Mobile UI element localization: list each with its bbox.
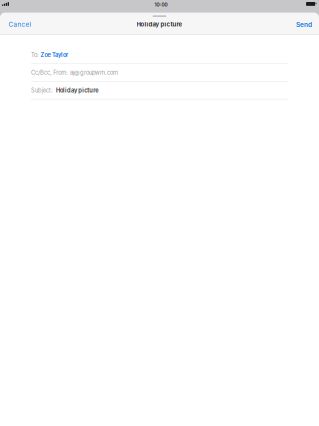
button[interactable]: Cc/Bcc, xyxy=(31,64,288,82)
staticText: picture xyxy=(78,87,98,94)
staticText: Zoe xyxy=(41,51,51,58)
staticText: Holiday xyxy=(56,87,77,94)
staticText: 10:00 xyxy=(154,2,167,8)
staticText: Send xyxy=(296,21,312,28)
staticText: aj@groupwm.com xyxy=(70,69,118,76)
staticText: Cc/Bcc, xyxy=(31,69,52,76)
button[interactable]: Send xyxy=(289,18,319,31)
staticText: Subject: xyxy=(31,87,53,94)
staticText: Taylor xyxy=(52,51,68,58)
staticText: To: xyxy=(31,51,39,58)
staticText: From: xyxy=(53,69,68,76)
staticText: Holiday picture xyxy=(136,21,182,28)
button[interactable]: Cancel xyxy=(0,18,40,31)
staticText: Cancel xyxy=(8,21,31,28)
button[interactable]: Subject: xyxy=(31,82,288,100)
button[interactable]: To: xyxy=(31,46,288,64)
